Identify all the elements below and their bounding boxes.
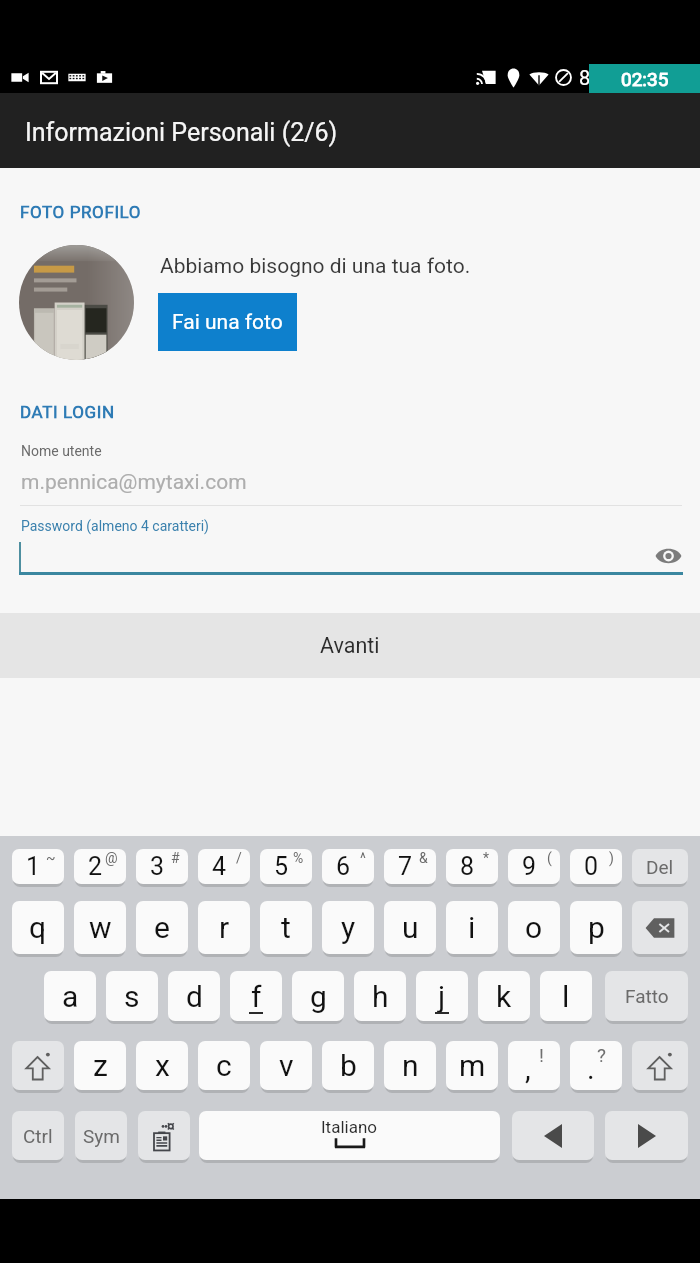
button[interactable]: Backspace	[632, 901, 688, 954]
staticText: Nome utente	[21, 443, 102, 459]
staticText: e	[154, 910, 170, 945]
staticText: 3	[150, 852, 165, 881]
button[interactable]: l	[540, 971, 592, 1021]
staticText: k	[496, 979, 512, 1014]
button[interactable]: .	[570, 1041, 622, 1090]
button[interactable]: 6	[322, 849, 374, 884]
staticText: DATI LOGIN	[20, 402, 115, 422]
button[interactable]: d	[168, 971, 220, 1021]
button[interactable]: g	[292, 971, 344, 1021]
button[interactable]: Fai una foto	[158, 293, 297, 351]
button[interactable]: v	[260, 1041, 312, 1090]
staticText: Fatto	[625, 985, 669, 1007]
button[interactable]: 0	[570, 849, 622, 884]
staticText: 9	[522, 852, 537, 881]
button[interactable]: u	[384, 901, 436, 954]
staticText: FOTO PROFILO	[20, 202, 142, 222]
staticText: l	[562, 979, 570, 1014]
button[interactable]: x	[136, 1041, 188, 1090]
staticText: 4	[212, 852, 227, 881]
button[interactable]: 7	[384, 849, 436, 884]
staticText: Fai una foto	[172, 310, 283, 335]
staticText: t	[281, 910, 291, 945]
staticText: 5	[274, 852, 289, 881]
staticText: v	[279, 1048, 294, 1083]
button[interactable]: 5	[260, 849, 312, 884]
staticText: )	[609, 850, 614, 866]
button[interactable]: Mostra password	[655, 544, 682, 568]
staticText: Italiano	[321, 1117, 378, 1137]
button[interactable]: m	[446, 1041, 498, 1090]
button[interactable]: 3	[136, 849, 188, 884]
button[interactable]: 8	[446, 849, 498, 884]
staticText: 2	[88, 852, 103, 881]
button[interactable]: p	[570, 901, 622, 954]
staticText: p	[588, 910, 605, 945]
button[interactable]: 2	[74, 849, 126, 884]
staticText: q	[29, 910, 47, 945]
button[interactable]: j	[416, 971, 468, 1021]
button[interactable]: Shift	[632, 1041, 688, 1090]
staticText: ^	[360, 850, 366, 866]
staticText: &	[419, 850, 428, 866]
button[interactable]: Shift	[12, 1041, 64, 1090]
staticText: 0	[584, 852, 599, 881]
button[interactable]: Impostazioni	[138, 1111, 190, 1160]
button[interactable]: z	[74, 1041, 126, 1090]
button[interactable]: o	[508, 901, 560, 954]
button[interactable]: Ctrl	[12, 1111, 64, 1160]
staticText: n	[402, 1048, 419, 1083]
staticText: j	[438, 979, 446, 1014]
staticText: b	[340, 1048, 357, 1083]
staticText: m.pennica@mytaxi.com	[21, 470, 247, 495]
button[interactable]: i	[446, 901, 498, 954]
button[interactable]: Foto profilo	[19, 245, 134, 360]
button[interactable]: Fatto	[605, 971, 688, 1021]
button[interactable]: ,	[508, 1041, 560, 1090]
button[interactable]: Italiano	[199, 1111, 500, 1160]
button[interactable]: r	[198, 901, 250, 954]
button[interactable]: f	[230, 971, 282, 1021]
staticText: 6	[336, 852, 351, 881]
staticText: 8	[460, 852, 475, 881]
staticText: g	[310, 979, 327, 1014]
button[interactable]: e	[136, 901, 188, 954]
staticText: i	[468, 910, 476, 945]
staticText: o	[525, 910, 543, 945]
other: Shift	[25, 1051, 51, 1081]
other: Backspace	[645, 917, 675, 939]
button[interactable]: b	[322, 1041, 374, 1090]
button[interactable]: s	[106, 971, 158, 1021]
button[interactable]: q	[12, 901, 64, 954]
button[interactable]: 4	[198, 849, 250, 884]
staticText: a	[62, 979, 79, 1014]
button[interactable]: Del	[632, 849, 688, 884]
staticText: 1	[26, 852, 41, 881]
button[interactable]: w	[74, 901, 126, 954]
staticText: Sym	[83, 1125, 120, 1147]
button[interactable]: c	[198, 1041, 250, 1090]
staticText: Abbiamo bisogno di una tua foto.	[160, 254, 471, 279]
button[interactable]: Sym	[75, 1111, 127, 1160]
other: Sinistra	[544, 1124, 562, 1148]
button[interactable]: k	[478, 971, 530, 1021]
button[interactable]: t	[260, 901, 312, 954]
button[interactable]: 9	[508, 849, 560, 884]
button[interactable]: h	[354, 971, 406, 1021]
button[interactable]: n	[384, 1041, 436, 1090]
button[interactable]: 1	[12, 849, 64, 884]
staticText: ~	[46, 850, 56, 866]
staticText: s	[124, 979, 140, 1014]
staticText: /	[236, 850, 242, 866]
staticText: Avanti	[320, 633, 380, 658]
staticText: Del	[646, 856, 674, 878]
button[interactable]: y	[322, 901, 374, 954]
staticText: Ctrl	[23, 1125, 53, 1147]
staticText: !	[539, 1044, 544, 1066]
staticText: r	[219, 910, 230, 945]
button[interactable]: Avanti	[0, 613, 700, 678]
button[interactable]: a	[44, 971, 96, 1021]
button[interactable]: Sinistra	[512, 1111, 594, 1160]
staticText: ,	[525, 1052, 531, 1086]
button[interactable]: Destra	[605, 1111, 688, 1160]
